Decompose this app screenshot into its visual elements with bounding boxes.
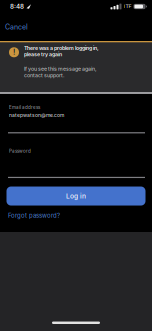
staticText: Forgot password? — [8, 212, 60, 219]
staticText: Log in — [66, 192, 86, 200]
staticText: 8:48 — [10, 3, 24, 10]
staticText: If you see this message again, contact s… — [24, 66, 97, 78]
staticText: natepwatson@me.com — [9, 112, 64, 118]
staticText: LTE — [123, 3, 131, 10]
staticText: Password — [9, 148, 31, 154]
button[interactable]: Forgot password? — [8, 212, 60, 219]
staticText: There was a problem logging in, please t… — [24, 45, 99, 58]
staticText: Email address — [9, 105, 40, 110]
button[interactable]: Log in — [6, 186, 145, 205]
staticText: ! — [13, 48, 15, 57]
button[interactable]: Cancel — [5, 23, 28, 31]
staticText: Cancel — [5, 23, 28, 31]
